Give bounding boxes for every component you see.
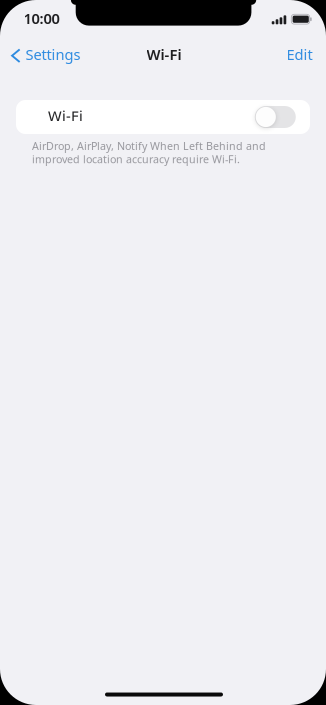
staticText: 10:00 xyxy=(23,9,59,28)
staticText: Edit xyxy=(286,45,312,64)
staticText: AirDrop, AirPlay, Notify When Left Behin… xyxy=(32,139,266,166)
staticText: Wi-Fi xyxy=(146,45,181,64)
button[interactable]: Wi-Fi xyxy=(16,100,310,134)
button[interactable]: Edit xyxy=(278,38,320,71)
staticText: Wi-Fi xyxy=(48,106,83,126)
button[interactable]: Settings xyxy=(1,38,89,71)
staticText: Settings xyxy=(26,45,81,64)
